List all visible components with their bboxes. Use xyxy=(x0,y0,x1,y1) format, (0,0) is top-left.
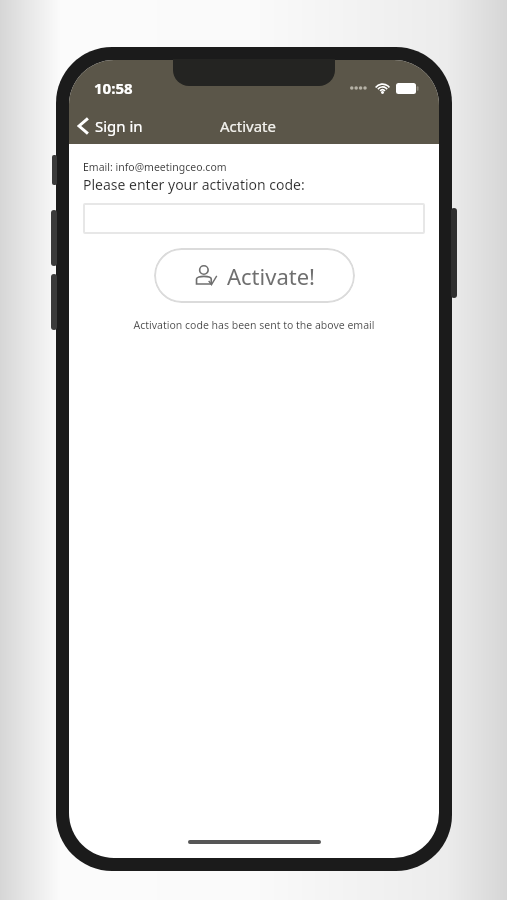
staticText: Activation code has been sent to the abo… xyxy=(83,318,425,332)
staticText: Activate xyxy=(220,116,276,136)
staticText: Please enter your activation code: xyxy=(83,175,305,194)
other: Back xyxy=(77,117,90,135)
staticText: Activate! xyxy=(227,261,316,291)
button[interactable]: Activate! xyxy=(154,248,355,303)
button[interactable]: Back xyxy=(69,111,155,141)
staticText: Email: info@meetingceo.com xyxy=(83,160,227,174)
staticText: Sign in xyxy=(95,116,143,136)
staticText: 10:58 xyxy=(94,78,133,98)
button[interactable] xyxy=(83,203,425,234)
